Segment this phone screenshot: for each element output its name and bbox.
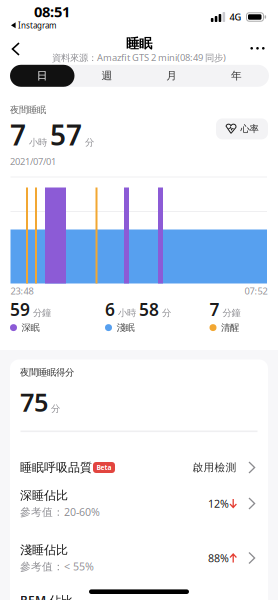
button[interactable]: More [244,41,271,56]
staticText: 6 [105,298,115,321]
button[interactable]: 日 [10,65,74,87]
staticText: 淺睡佔比 [20,542,68,557]
staticText: 參考值：< 55% [20,559,94,573]
staticText: 淺眠 [116,322,134,333]
staticText: 資料來源：Amazfit GTS 2 mini(08:49 同步) [52,51,226,64]
staticText: 小時 [115,307,139,319]
staticText: 4G [229,11,241,23]
staticText: Instagram [18,20,56,31]
staticText: 88% [208,551,229,565]
staticText: 日 [37,69,48,82]
staticText: 啟用檢測 [192,461,236,474]
staticText: 分 [85,137,94,148]
staticText: 心率 [241,123,259,135]
staticText: 小時 [29,137,47,148]
staticText: 夜間睡眠 [10,104,46,116]
staticText: 分 [159,307,171,319]
button[interactable]: 月 [139,65,204,87]
staticText: 深眠 [21,322,39,333]
staticText: 分鐘 [30,307,51,319]
staticText: 08:51 [34,2,70,21]
staticText: 7 [209,298,219,321]
staticText: 深睡佔比 [20,488,68,503]
button[interactable]: 深睡佔比 [0,0,278,600]
staticText: 12% [208,496,229,511]
button[interactable]: 淺睡佔比 [0,0,278,600]
staticText: 週 [101,69,112,82]
button[interactable]: 年 [204,65,269,87]
staticText: 年 [231,69,242,82]
staticText: 分鐘 [219,307,240,319]
staticText: 59 [10,298,30,321]
staticText: 睡眠 [126,35,152,52]
staticText: 清醒 [221,322,239,333]
staticText: 7 [10,116,26,153]
staticText: 2021/07/01 [10,155,56,168]
staticText: Beta [96,463,111,472]
staticText: 夜間睡眠得分 [20,367,74,378]
button[interactable]: 心率 [216,118,268,139]
button[interactable]: 睡眠呼吸品質 [0,0,278,600]
staticText: 月 [166,69,177,82]
staticText: 58 [139,298,159,321]
button[interactable]: 週 [74,65,139,87]
staticText: 參考值：20-60% [20,505,100,519]
staticText: 75 [20,385,48,419]
staticText: 57 [50,116,82,153]
button[interactable]: Back [6,37,25,61]
staticText: 睡眠呼吸品質 [20,460,92,475]
staticText: 07:52 [244,285,267,297]
staticText: 分 [51,403,60,414]
staticText: 23:48 [10,285,33,297]
staticText: REM 佔比 [20,592,73,600]
